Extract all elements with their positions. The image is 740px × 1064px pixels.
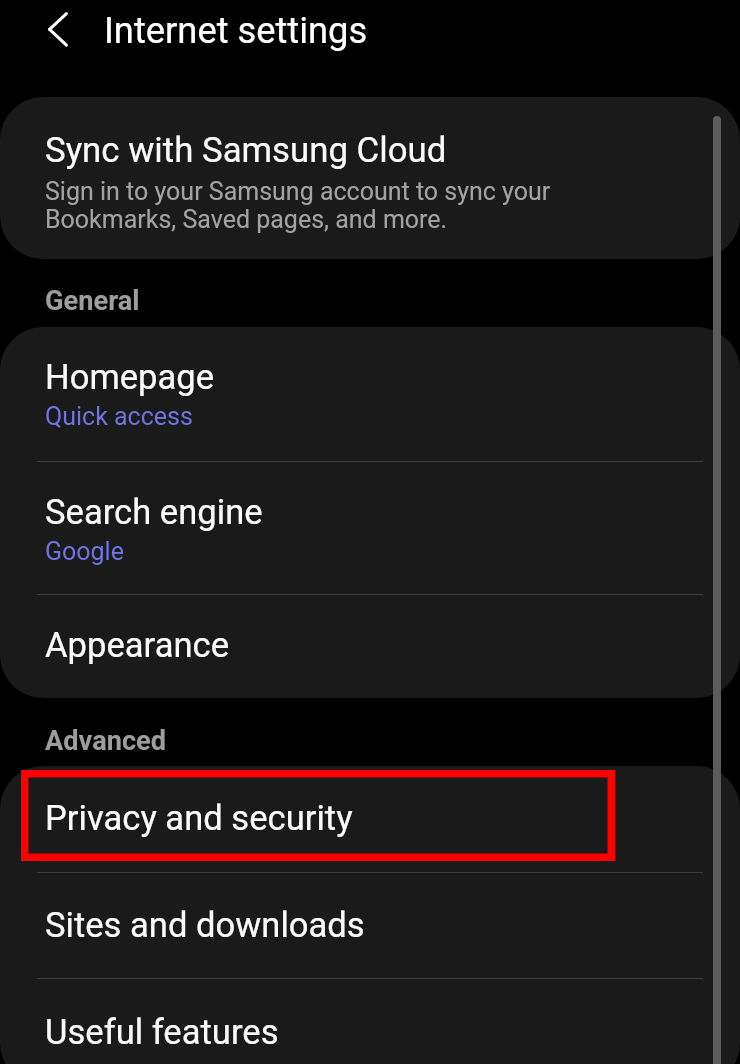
staticText: Advanced: [45, 726, 167, 756]
button[interactable]: Appearance: [0, 595, 740, 698]
staticText: Sites and downloads: [45, 905, 365, 945]
staticText: Search engine: [45, 492, 263, 532]
staticText: Privacy and security: [45, 798, 353, 838]
button[interactable]: Navigate up: [22, 0, 94, 60]
staticText: Google: [45, 536, 124, 566]
button[interactable]: Search engine: [0, 462, 740, 594]
staticText: Homepage: [45, 357, 215, 397]
button[interactable]: Sync with Samsung Cloud: [0, 97, 740, 259]
staticText: Appearance: [45, 625, 229, 665]
button[interactable]: Sites and downloads: [0, 873, 740, 978]
staticText: Useful features: [45, 1012, 279, 1052]
staticText: General: [45, 286, 140, 316]
button[interactable]: Useful features: [0, 979, 740, 1064]
staticText: Sync with Samsung Cloud: [45, 130, 447, 170]
button[interactable]: Privacy and security: [0, 766, 740, 872]
button[interactable]: Homepage: [0, 327, 740, 461]
staticText: Quick access: [45, 401, 193, 431]
staticText: Sign in to your Samsung account to sync …: [45, 178, 565, 234]
staticText: Internet settings: [104, 11, 368, 52]
